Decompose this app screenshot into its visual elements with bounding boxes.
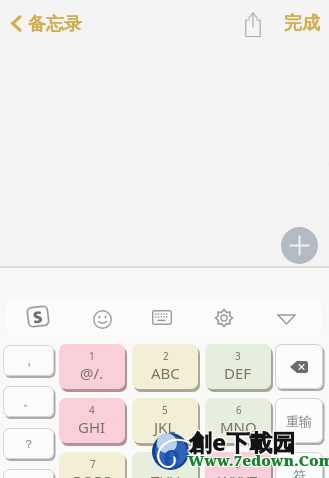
button[interactable]: 1 [59, 344, 125, 389]
button[interactable]: 9 [205, 452, 271, 478]
button[interactable]: Keyboard [148, 303, 176, 331]
staticText: WXYZ [218, 471, 258, 478]
staticText: Www.7edown.Com [187, 451, 329, 471]
staticText: 。 [23, 394, 35, 409]
button[interactable]: 5 [132, 398, 198, 443]
staticText: TUV [151, 471, 180, 478]
staticText: Www.7edown.Com [189, 451, 329, 471]
staticText: Www.7edown.Com [189, 449, 329, 469]
staticText: 符 [293, 467, 306, 478]
button[interactable]: 8 [132, 452, 198, 478]
staticText: 1 [89, 349, 95, 363]
button[interactable]: 。 [3, 386, 54, 417]
staticText: PQRS [73, 471, 112, 478]
staticText: 重输 [286, 413, 312, 429]
staticText: Www.7edown.Com [188, 450, 329, 470]
button[interactable]: 6 [205, 398, 271, 443]
button[interactable]: Share [240, 11, 266, 37]
button[interactable]: 3 [205, 344, 271, 389]
button[interactable]: ！ [3, 469, 54, 478]
staticText: Www.7edown.Com [187, 449, 329, 469]
staticText: JKL [154, 417, 176, 437]
staticText: DEF [224, 363, 252, 383]
staticText: 2 [163, 349, 169, 363]
staticText: GHI [78, 417, 106, 437]
staticText: ？ [23, 436, 35, 451]
button[interactable]: 完成 [282, 7, 322, 40]
button[interactable]: Emoji [88, 305, 116, 333]
staticText: e [163, 435, 181, 472]
button[interactable]: Settings [210, 304, 238, 332]
staticText: ABC [151, 363, 180, 383]
button[interactable]: ， [3, 345, 54, 376]
button[interactable]: 备忘录 [11, 10, 82, 36]
button[interactable]: 重输 [275, 398, 323, 443]
staticText: 完成 [284, 12, 320, 35]
staticText: ， [23, 353, 35, 368]
staticText: 創e下載园 [190, 427, 297, 458]
staticText: S [32, 305, 44, 328]
button[interactable]: Delete [275, 344, 323, 389]
staticText: 創e下載园 [190, 425, 297, 456]
button[interactable]: 4 [59, 398, 125, 443]
staticText: 5 [162, 403, 168, 417]
staticText: 7 [90, 457, 96, 471]
staticText: 9 [235, 457, 241, 471]
staticText: 8 [163, 457, 169, 471]
staticText: MNO [220, 417, 257, 437]
button[interactable]: Input method [22, 301, 53, 332]
button[interactable]: ？ [3, 428, 54, 459]
staticText: 3 [235, 349, 241, 363]
staticText: 6 [236, 403, 242, 417]
staticText: 創e下載园 [188, 425, 295, 456]
staticText: 創e下載园 [189, 426, 296, 457]
staticText: 4 [89, 403, 95, 417]
staticText: 备忘录 [28, 13, 82, 36]
button[interactable]: Add [281, 227, 318, 264]
staticText: 創e下載园 [188, 427, 295, 458]
button[interactable]: Hide keyboard [272, 305, 300, 333]
staticText: @/. [80, 363, 104, 383]
button[interactable]: 符 [275, 452, 323, 478]
button[interactable]: 2 [132, 344, 198, 389]
button[interactable]: 7 [59, 452, 125, 478]
